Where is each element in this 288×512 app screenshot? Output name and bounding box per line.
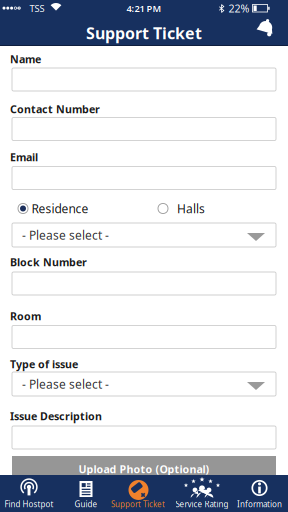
button[interactable]: Name (12, 68, 276, 91)
staticText: TSS (29, 2, 44, 14)
staticText: Guide (74, 499, 97, 509)
staticText: 22% (228, 1, 249, 15)
staticText: Service Rating (175, 499, 228, 509)
button[interactable]: Block Number (12, 272, 276, 295)
button[interactable]: Halls (157, 202, 169, 214)
button[interactable]: - Please select - (12, 372, 276, 396)
button[interactable]: Upload Photo (Optional) (12, 456, 276, 480)
staticText: Contact Number (10, 102, 100, 116)
staticText: Name (10, 52, 41, 66)
staticText: Type of issue (10, 357, 78, 371)
staticText: - Please select - (22, 227, 109, 243)
staticText: Upload Photo (Optional) (78, 462, 209, 476)
staticText: - Please select - (22, 376, 109, 392)
staticText: Residence (31, 200, 88, 216)
button[interactable]: Issue Description (12, 426, 276, 449)
staticText: Block Number (10, 255, 87, 269)
button[interactable]: Find Hostpot (0, 475, 61, 512)
button[interactable]: Residence (17, 202, 29, 214)
staticText: Find Hostpot (4, 499, 53, 509)
staticText: Information (237, 499, 282, 509)
button[interactable]: Support Ticket (106, 475, 170, 512)
button[interactable]: Guide (54, 475, 118, 512)
staticText: Room (10, 309, 41, 323)
staticText: Support Ticket (111, 499, 165, 509)
staticText: Support Ticket (86, 22, 202, 44)
button[interactable]: - Please select - (12, 223, 276, 247)
button[interactable]: Notifications (254, 17, 276, 39)
staticText: Issue Description (10, 409, 102, 423)
button[interactable]: Information (227, 475, 288, 512)
staticText: Email (10, 150, 38, 164)
staticText: 4:21 PM (126, 2, 161, 14)
button[interactable]: Email (12, 166, 276, 189)
staticText: Halls (177, 200, 205, 216)
button[interactable]: Service Rating (170, 475, 234, 512)
